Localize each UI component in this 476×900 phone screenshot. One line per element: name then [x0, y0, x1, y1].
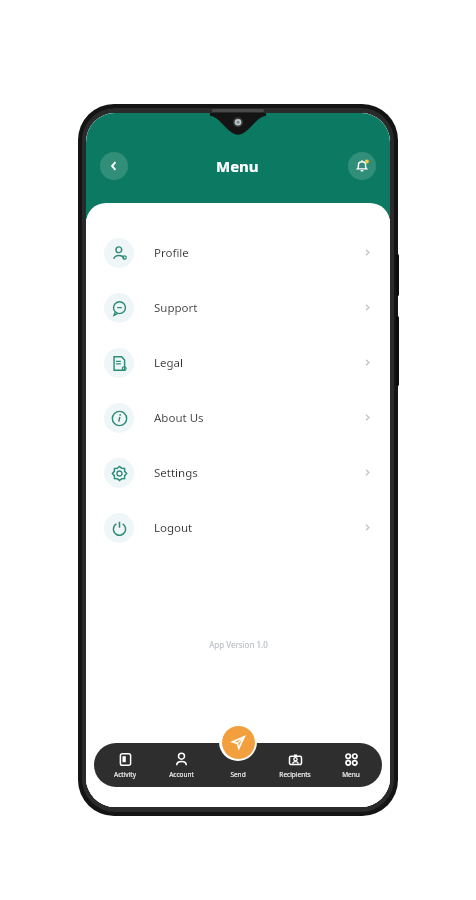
staticText: Support	[154, 300, 198, 316]
button[interactable]: Activity	[99, 752, 151, 779]
staticText: Profile	[154, 245, 189, 261]
button[interactable]: Send	[212, 752, 264, 779]
button[interactable]: Logout	[86, 500, 390, 555]
button[interactable]: Account	[155, 752, 207, 779]
staticText: App Version 1.0	[209, 639, 268, 650]
staticText: About Us	[154, 410, 204, 426]
button[interactable]: Profile	[86, 225, 390, 280]
staticText: Logout	[154, 520, 193, 536]
staticText: Account	[169, 770, 194, 779]
button[interactable]: Settings	[86, 445, 390, 500]
button[interactable]: Menu	[325, 752, 377, 779]
button[interactable]: Send	[222, 726, 255, 759]
button[interactable]: Back	[100, 152, 128, 180]
staticText: Recipients	[279, 770, 311, 779]
button[interactable]: Recipients	[269, 752, 321, 779]
button[interactable]: Support	[86, 280, 390, 335]
button[interactable]: About Us	[86, 390, 390, 445]
staticText: Menu	[216, 156, 259, 176]
button[interactable]: Notifications	[348, 152, 376, 180]
staticText: Menu	[342, 770, 360, 779]
staticText: Activity	[114, 770, 136, 779]
button[interactable]: Legal	[86, 335, 390, 390]
staticText: Legal	[154, 355, 184, 371]
staticText: Settings	[154, 465, 198, 481]
staticText: Send	[230, 770, 246, 779]
